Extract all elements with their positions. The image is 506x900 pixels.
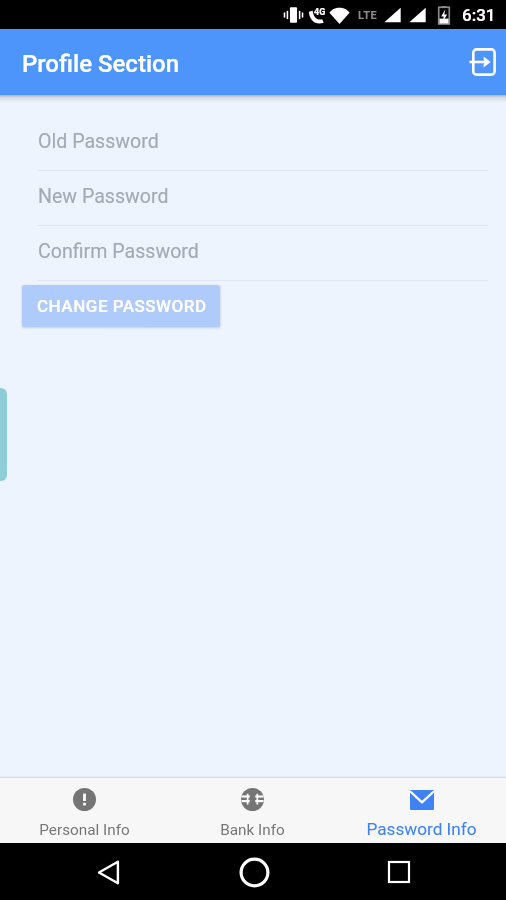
staticText: Profile Section	[22, 50, 180, 78]
button[interactable]: Logout	[458, 38, 506, 86]
staticText: Old Password	[38, 130, 159, 153]
button[interactable]: CHANGE PASSWORD	[22, 285, 220, 327]
button[interactable]: Recents	[379, 852, 419, 892]
staticText: 4G	[314, 7, 326, 18]
button[interactable]: Back	[88, 852, 128, 892]
staticText: LTE	[358, 9, 378, 22]
button[interactable]: Bank Info	[168, 778, 337, 843]
button[interactable]: Password Info	[337, 778, 506, 843]
staticText: Confirm Password	[38, 240, 199, 263]
staticText: CHANGE PASSWORD	[37, 296, 207, 316]
staticText: Bank Info	[220, 821, 285, 839]
staticText: Password Info	[366, 819, 477, 839]
staticText: Personal Info	[39, 821, 130, 839]
button[interactable]: Home	[234, 852, 274, 892]
button[interactable]: Personal Info	[0, 778, 168, 843]
staticText: 6:31	[462, 5, 496, 25]
staticText: New Password	[38, 185, 169, 208]
